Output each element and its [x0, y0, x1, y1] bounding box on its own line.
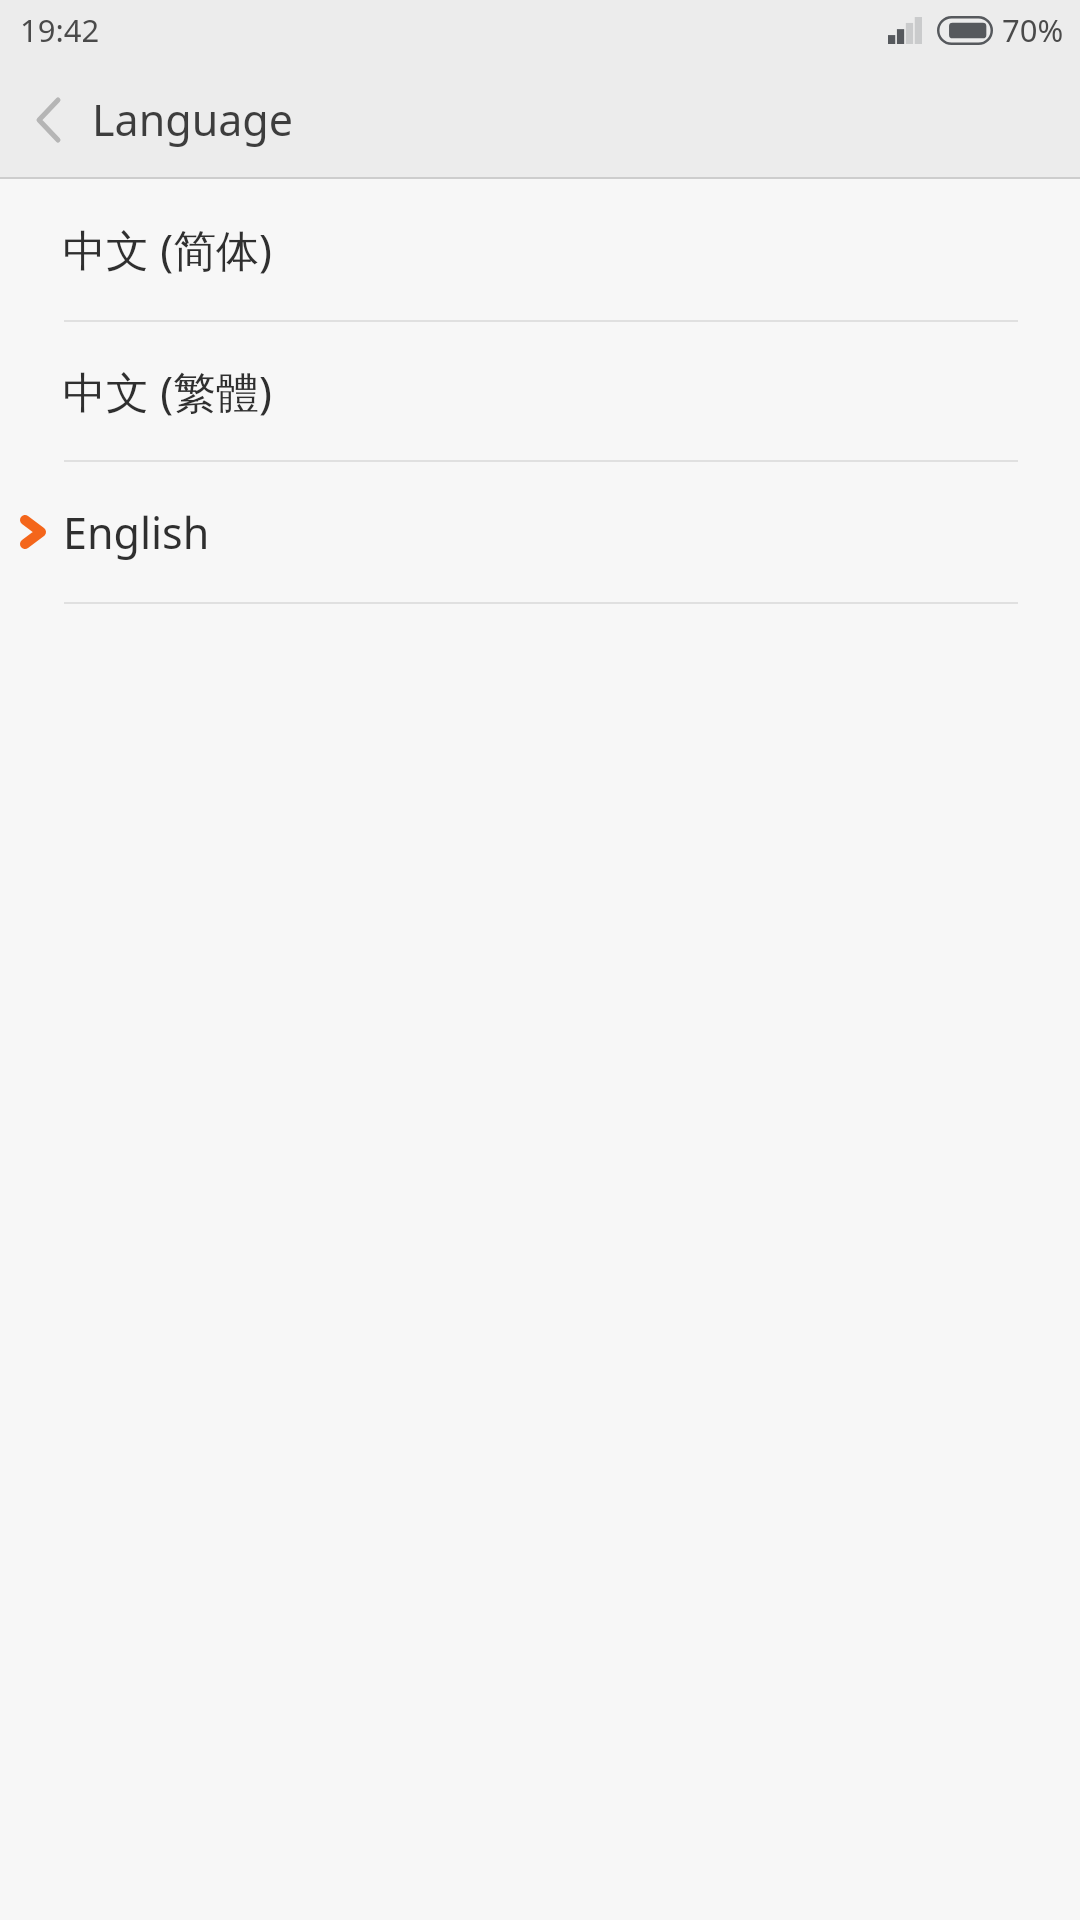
button[interactable]: English	[0, 462, 1080, 602]
staticText: 19:42	[20, 9, 100, 51]
staticText: 中文 (繁體)	[63, 362, 272, 421]
staticText: Language	[92, 90, 294, 149]
staticText: 中文 (简体)	[63, 220, 272, 279]
button[interactable]: 中文 (简体)	[0, 179, 1080, 320]
staticText: English	[63, 503, 210, 562]
button[interactable]: Back	[12, 84, 84, 156]
staticText: 70%	[1002, 9, 1064, 51]
button[interactable]: 中文 (繁體)	[0, 322, 1080, 460]
